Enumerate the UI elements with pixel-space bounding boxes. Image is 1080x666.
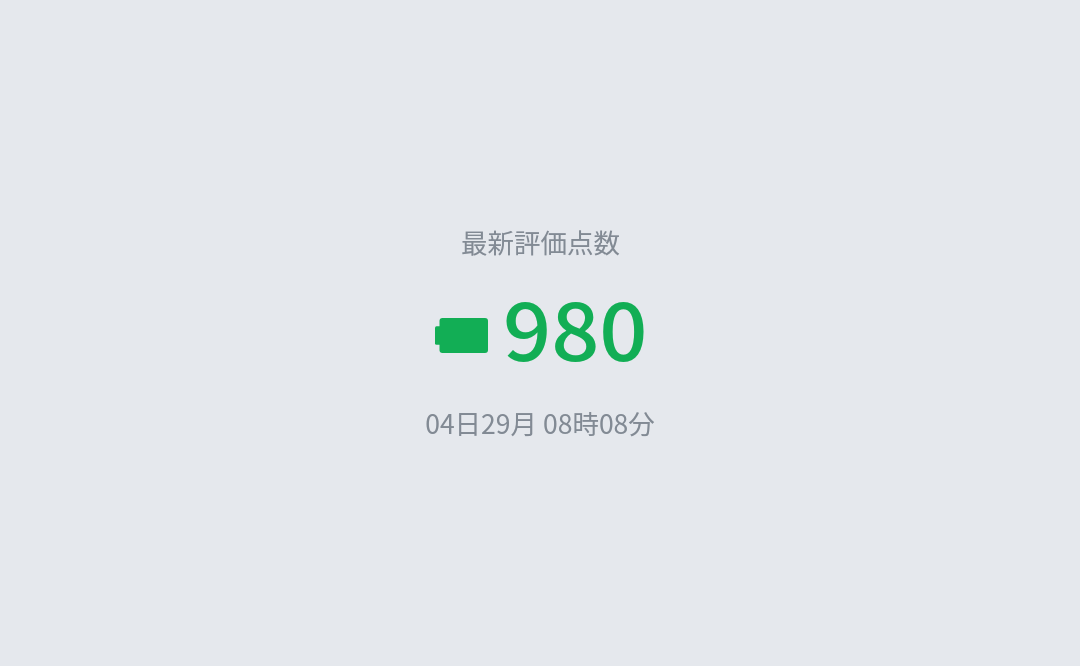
other: Battery level	[435, 318, 488, 353]
button[interactable]: 最新評価点数	[330, 208, 750, 458]
staticText: 最新評価点数	[461, 222, 620, 260]
staticText: 04日29月 08時08分	[425, 403, 655, 441]
staticText: 980	[503, 269, 648, 383]
